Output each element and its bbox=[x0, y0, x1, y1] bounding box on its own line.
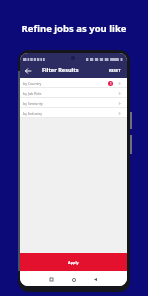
staticText: Refine jobs as you like bbox=[0, 22, 148, 35]
staticText: by Country bbox=[23, 81, 42, 86]
button[interactable]: Apply bbox=[20, 253, 127, 271]
button[interactable]: Back bbox=[90, 273, 101, 284]
button[interactable]: by Seniority bbox=[20, 98, 127, 108]
staticText: by Seniority bbox=[23, 101, 43, 106]
button[interactable]: by Job Role bbox=[20, 88, 127, 98]
staticText: by Industry bbox=[23, 111, 43, 116]
staticText: Apply bbox=[68, 260, 79, 265]
staticText: by Job Role bbox=[23, 91, 42, 96]
staticText: Filter Results bbox=[42, 66, 79, 74]
button[interactable]: by Country bbox=[20, 78, 127, 88]
button[interactable]: by Industry bbox=[20, 108, 127, 118]
button[interactable]: Back bbox=[22, 65, 33, 76]
staticText: 1 bbox=[110, 82, 112, 86]
button[interactable]: Recent apps bbox=[46, 273, 57, 284]
button[interactable]: RESET bbox=[108, 67, 122, 74]
staticText: RESET bbox=[109, 68, 121, 73]
button[interactable]: Home bbox=[68, 273, 79, 284]
